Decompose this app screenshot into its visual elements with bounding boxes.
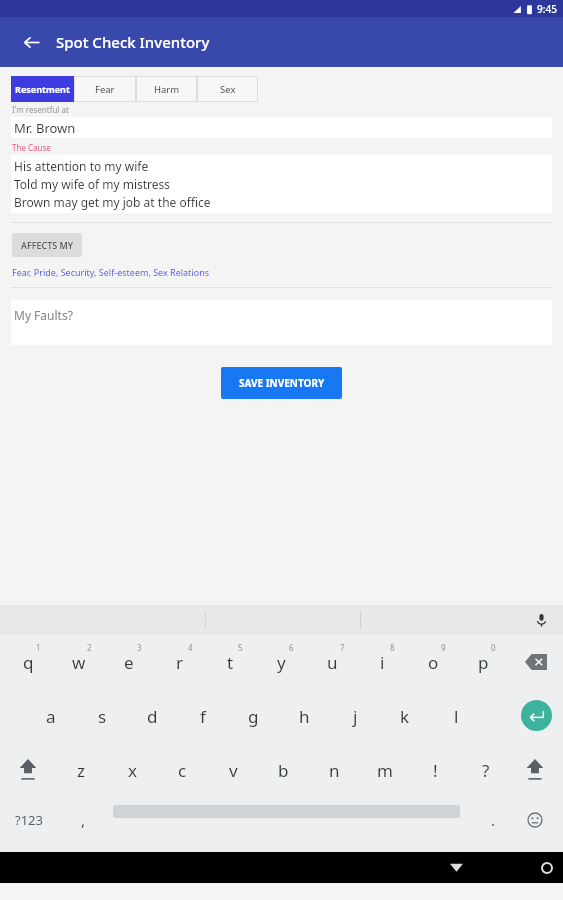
button[interactable]: . xyxy=(470,799,516,841)
button[interactable]: , xyxy=(60,799,106,841)
staticText: Sex xyxy=(220,83,236,96)
staticText: y xyxy=(277,651,286,674)
staticText: l xyxy=(454,705,459,728)
button[interactable]: c xyxy=(159,745,205,795)
staticText: f xyxy=(200,705,206,728)
staticText: 5 xyxy=(238,642,243,653)
button[interactable]: p xyxy=(460,637,506,687)
staticText: 2 xyxy=(87,642,92,653)
button[interactable]: My Faults? xyxy=(11,300,552,345)
staticText: Spot Check Inventory xyxy=(56,32,210,52)
button[interactable]: y xyxy=(258,637,304,687)
staticText: 7 xyxy=(340,642,345,653)
staticText: p xyxy=(478,651,489,674)
staticText: SAVE INVENTORY xyxy=(239,376,325,390)
button[interactable]: m xyxy=(362,745,408,795)
staticText: x xyxy=(128,759,137,782)
button[interactable]: ?123 xyxy=(2,799,56,841)
button[interactable]: w xyxy=(56,637,102,687)
staticText: z xyxy=(77,759,85,782)
button[interactable]: Shift xyxy=(10,749,46,789)
staticText: 4 xyxy=(188,642,193,653)
staticText: ?123 xyxy=(15,811,43,829)
staticText: 8 xyxy=(390,642,395,653)
staticText: v xyxy=(229,759,238,782)
button[interactable]: x xyxy=(109,745,155,795)
staticText: AFFECTS MY xyxy=(21,239,73,251)
staticText: c xyxy=(178,759,187,782)
staticText: . xyxy=(491,810,496,830)
staticText: The Cause xyxy=(12,142,51,153)
button[interactable]: Voice input xyxy=(531,610,551,630)
button[interactable]: n xyxy=(311,745,357,795)
staticText: 0 xyxy=(491,642,496,653)
button[interactable]: f xyxy=(180,691,226,741)
button[interactable]: Back xyxy=(14,25,48,59)
staticText: w xyxy=(72,651,86,674)
button[interactable]: SAVE INVENTORY xyxy=(221,367,342,399)
button[interactable]: g xyxy=(230,691,276,741)
staticText: r xyxy=(176,651,184,674)
staticText: I'm resentful at xyxy=(12,104,69,115)
staticText: My Faults? xyxy=(14,307,73,323)
button[interactable]: u xyxy=(309,637,355,687)
button[interactable]: Mr. Brown xyxy=(11,117,552,138)
button[interactable]: r xyxy=(157,637,203,687)
button[interactable]: Resentment xyxy=(11,76,74,102)
staticText: Brown may get my job at the office xyxy=(14,194,211,210)
button[interactable]: j xyxy=(332,691,378,741)
staticText: q xyxy=(23,651,34,674)
button[interactable]: e xyxy=(106,637,152,687)
button[interactable]: o xyxy=(410,637,456,687)
button[interactable]: Back xyxy=(175,852,563,883)
staticText: a xyxy=(46,705,56,728)
button[interactable]: q xyxy=(5,637,51,687)
staticText: k xyxy=(400,705,410,728)
staticText: b xyxy=(278,759,289,782)
staticText: j xyxy=(353,705,358,728)
staticText: 6 xyxy=(289,642,294,653)
button[interactable]: Recents xyxy=(355,852,563,883)
button[interactable]: b xyxy=(260,745,306,795)
button[interactable]: l xyxy=(433,691,479,741)
button[interactable]: Sex xyxy=(197,76,258,102)
button[interactable]: v xyxy=(210,745,256,795)
staticText: i xyxy=(380,651,385,674)
button[interactable]: Backspace xyxy=(513,645,559,679)
staticText: His attention to my wife xyxy=(14,158,149,174)
staticText: Fear xyxy=(95,83,115,96)
staticText: Fear, Pride, Security, Self-esteem, Sex … xyxy=(12,266,210,278)
button[interactable]: ! xyxy=(412,745,458,795)
staticText: u xyxy=(327,651,338,674)
button[interactable]: Fear xyxy=(74,76,136,102)
button[interactable]: Harm xyxy=(136,76,197,102)
button[interactable]: Home xyxy=(265,852,563,883)
staticText: Told my wife of my mistress xyxy=(14,176,171,192)
staticText: 9:45 xyxy=(537,2,557,16)
button[interactable]: AFFECTS MY xyxy=(12,233,82,257)
staticText: o xyxy=(428,651,439,674)
button[interactable]: k xyxy=(382,691,428,741)
staticText: m xyxy=(377,759,393,782)
staticText: 9 xyxy=(441,642,446,653)
button[interactable]: His attention to my wife xyxy=(11,155,552,213)
button[interactable]: Emoji xyxy=(518,803,552,837)
staticText: Mr. Brown xyxy=(14,119,76,137)
button[interactable]: ? xyxy=(463,745,509,795)
button[interactable]: Shift xyxy=(517,749,553,789)
button[interactable]: i xyxy=(359,637,405,687)
button[interactable]: h xyxy=(281,691,327,741)
button[interactable]: a xyxy=(28,691,74,741)
button[interactable]: t xyxy=(207,637,253,687)
staticText: 3 xyxy=(137,642,142,653)
staticText: ? xyxy=(482,759,490,782)
button[interactable]: z xyxy=(58,745,104,795)
staticText: h xyxy=(299,705,310,728)
button[interactable]: Enter xyxy=(519,698,553,732)
button[interactable]: d xyxy=(129,691,175,741)
staticText: n xyxy=(329,759,340,782)
button[interactable]: s xyxy=(79,691,125,741)
staticText: 1 xyxy=(36,642,41,653)
staticText: Harm xyxy=(154,83,180,96)
